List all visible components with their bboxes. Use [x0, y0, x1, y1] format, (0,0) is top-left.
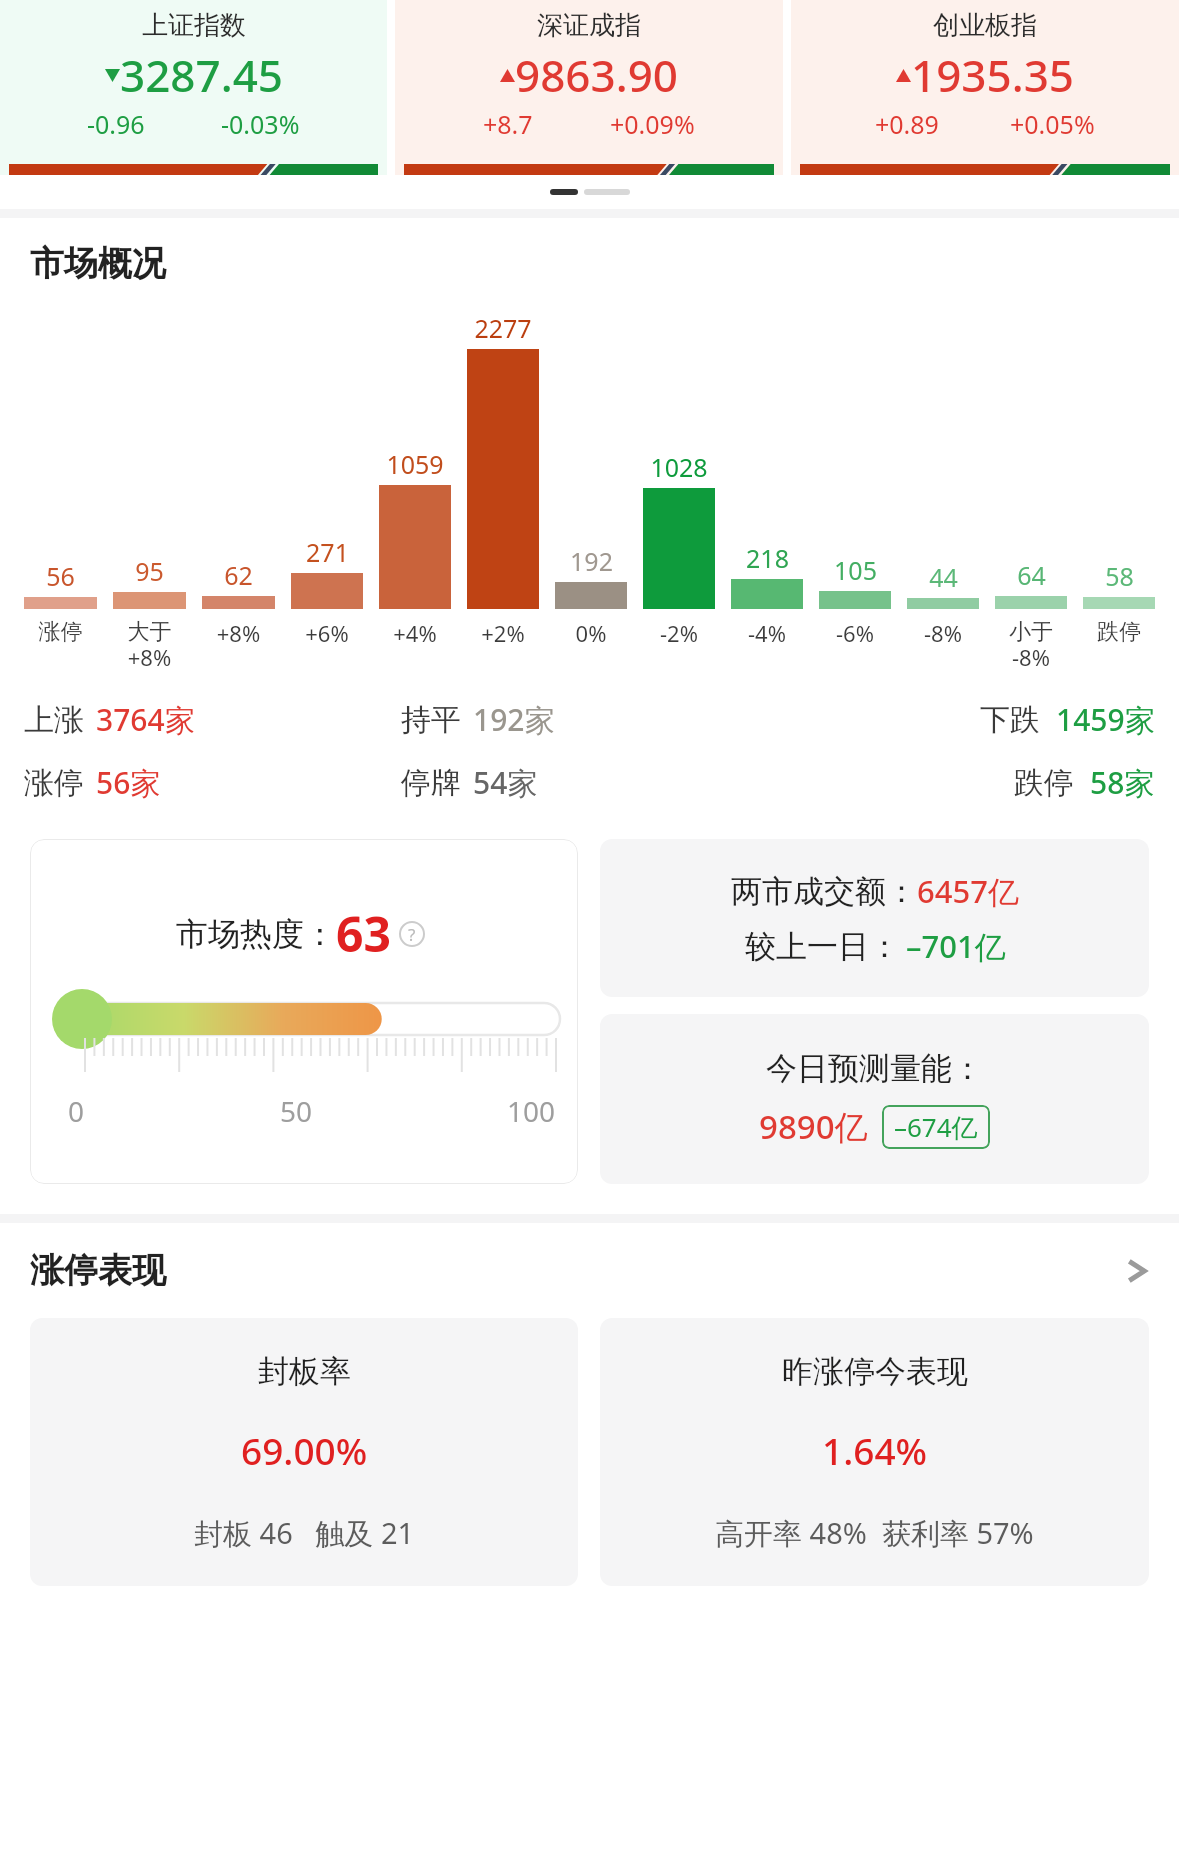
button[interactable]: 封板率	[30, 1318, 578, 1586]
staticText: 上涨	[24, 701, 84, 739]
staticText: 1028	[650, 450, 708, 484]
staticText: 涨停	[18, 618, 103, 646]
staticText: 持平	[401, 701, 461, 739]
staticText: 涨停	[24, 764, 84, 802]
staticText: -8%	[901, 618, 985, 648]
staticText: 56家	[96, 762, 161, 803]
staticText: 62	[224, 558, 253, 592]
staticText: +0.09%	[610, 107, 695, 141]
staticText: 3287.45	[120, 45, 283, 105]
staticText: 市场热度：	[176, 914, 336, 954]
staticText: 涨停表现	[30, 1249, 1125, 1292]
staticText: 192家	[473, 699, 555, 740]
staticText: 95	[135, 554, 164, 588]
staticText: 跌停	[1077, 618, 1161, 646]
staticText: 192	[570, 544, 613, 578]
staticText: +6%	[285, 618, 369, 648]
staticText: -0.03%	[221, 107, 300, 141]
staticText: 1459家	[1056, 699, 1155, 740]
staticText: 63	[336, 901, 391, 966]
staticText: 0%	[549, 618, 633, 648]
staticText: 停牌	[401, 764, 461, 802]
staticText: +8%	[196, 618, 281, 648]
staticText: 大于 +8%	[107, 618, 192, 673]
staticText: 50	[280, 1092, 313, 1130]
staticText: 6457亿	[917, 870, 1019, 912]
staticText: 218	[746, 541, 789, 575]
staticText: 封板 46 触及 21	[194, 1513, 415, 1553]
staticText: 较上一日：	[745, 927, 900, 966]
button[interactable]: 两市成交额：	[600, 839, 1149, 997]
staticText: 105	[834, 553, 877, 587]
staticText: 高开率 48% 获利率 57%	[715, 1513, 1034, 1553]
staticText: 271	[306, 535, 349, 569]
staticText: +8.7	[483, 107, 533, 141]
staticText: 市场概况	[30, 242, 166, 285]
other: 查看涨停表现详情	[1125, 1254, 1149, 1288]
staticText: –701亿	[906, 925, 1006, 967]
button[interactable]: 昨涨停今表现	[600, 1318, 1149, 1586]
staticText: 封板率	[258, 1352, 351, 1391]
button[interactable]: 创业板指	[791, 0, 1179, 175]
button[interactable]: 上证指数	[0, 0, 387, 175]
staticText: 64	[1017, 558, 1046, 592]
staticText: +0.89	[875, 107, 939, 141]
button[interactable]: 市场热度：	[30, 839, 578, 1184]
staticText: 深证成指	[537, 9, 641, 42]
staticText: 0	[68, 1092, 85, 1130]
button[interactable]: 涨停表现	[30, 1249, 1149, 1292]
staticText: 9890亿	[759, 1104, 868, 1149]
staticText: 100	[507, 1092, 556, 1130]
staticText: 56	[46, 559, 75, 593]
staticText: +4%	[373, 618, 457, 648]
staticText: 58家	[1090, 762, 1155, 803]
button[interactable]: 今日预测量能：	[600, 1014, 1149, 1184]
button[interactable]: 深证成指	[395, 0, 783, 175]
staticText: 2277	[474, 311, 532, 345]
staticText: 两市成交额：	[731, 872, 917, 911]
staticText: 下跌	[980, 701, 1040, 739]
staticText: 1935.35	[911, 45, 1074, 105]
staticText: ?	[408, 923, 416, 946]
staticText: 44	[929, 560, 958, 594]
staticText: –674亿	[894, 1109, 978, 1145]
staticText: 小于 -8%	[989, 618, 1073, 673]
staticText: 跌停	[1014, 764, 1074, 802]
staticText: 创业板指	[933, 9, 1037, 42]
staticText: -0.96	[87, 107, 145, 141]
staticText: 3764家	[96, 699, 195, 740]
staticText: 上证指数	[142, 9, 246, 42]
staticText: 9863.90	[515, 45, 678, 105]
staticText: 1.64%	[822, 1425, 928, 1475]
staticText: 今日预测量能：	[766, 1049, 983, 1088]
staticText: -4%	[725, 618, 809, 648]
staticText: +2%	[461, 618, 545, 648]
staticText: 昨涨停今表现	[782, 1352, 968, 1391]
staticText: -2%	[637, 618, 721, 648]
staticText: -6%	[813, 618, 897, 648]
staticText: 54家	[473, 762, 538, 803]
staticText: +0.05%	[1010, 107, 1095, 141]
staticText: 69.00%	[241, 1425, 368, 1475]
staticText: 1059	[386, 447, 444, 481]
staticText: 58	[1105, 559, 1134, 593]
